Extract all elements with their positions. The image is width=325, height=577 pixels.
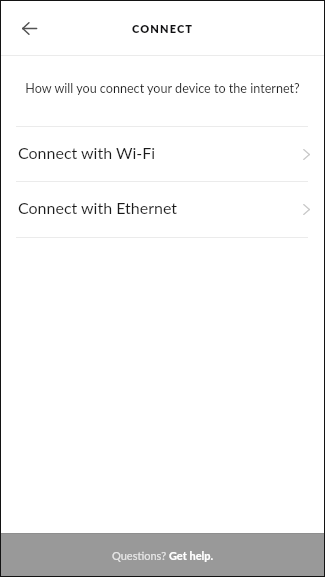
- staticText: Connect with Ethernet: [18, 198, 178, 217]
- staticText: Questions? Get help.: [112, 549, 214, 562]
- button[interactable]: Questions? Get help.: [0, 533, 325, 577]
- button[interactable]: Connect with Wi-Fi: [0, 127, 325, 181]
- button[interactable]: Back: [13, 12, 45, 44]
- staticText: Connect with Wi-Fi: [18, 143, 156, 162]
- staticText: How will you connect your device to the …: [25, 81, 300, 96]
- button[interactable]: Connect with Ethernet: [0, 182, 325, 237]
- staticText: CONNECT: [132, 22, 194, 35]
